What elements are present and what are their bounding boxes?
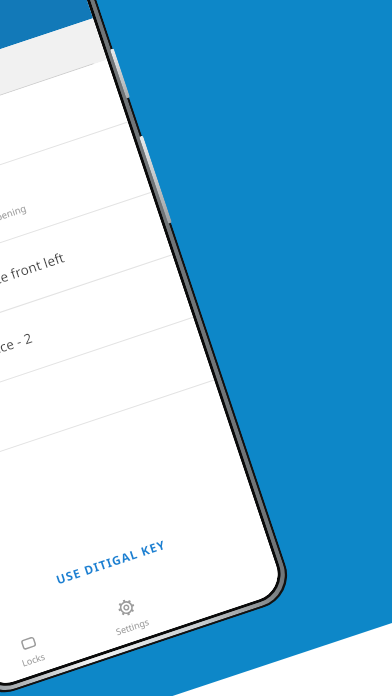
button[interactable] xyxy=(0,318,214,479)
staticText: Main entrance front left xyxy=(0,248,67,313)
staticText: USE DITIGAL KEY xyxy=(54,536,168,587)
button[interactable]: Locks xyxy=(0,606,87,690)
staticText: Hall entrance - 2 xyxy=(0,328,35,378)
button[interactable]: Floor 25 xyxy=(0,122,151,292)
staticText: Locks xyxy=(20,650,47,669)
staticText: Settings xyxy=(114,615,151,637)
button[interactable]: Room 2344 xyxy=(0,60,128,221)
button[interactable]: Hall entrance - 2 xyxy=(0,255,193,417)
button[interactable]: Settings xyxy=(70,573,186,657)
button[interactable]: Search for a lock xyxy=(0,18,107,159)
button[interactable]: USE DITIGAL KEY xyxy=(0,502,240,621)
staticText: Tap to activate remote opening xyxy=(0,202,28,258)
button[interactable]: Main entrance front left xyxy=(0,193,172,354)
